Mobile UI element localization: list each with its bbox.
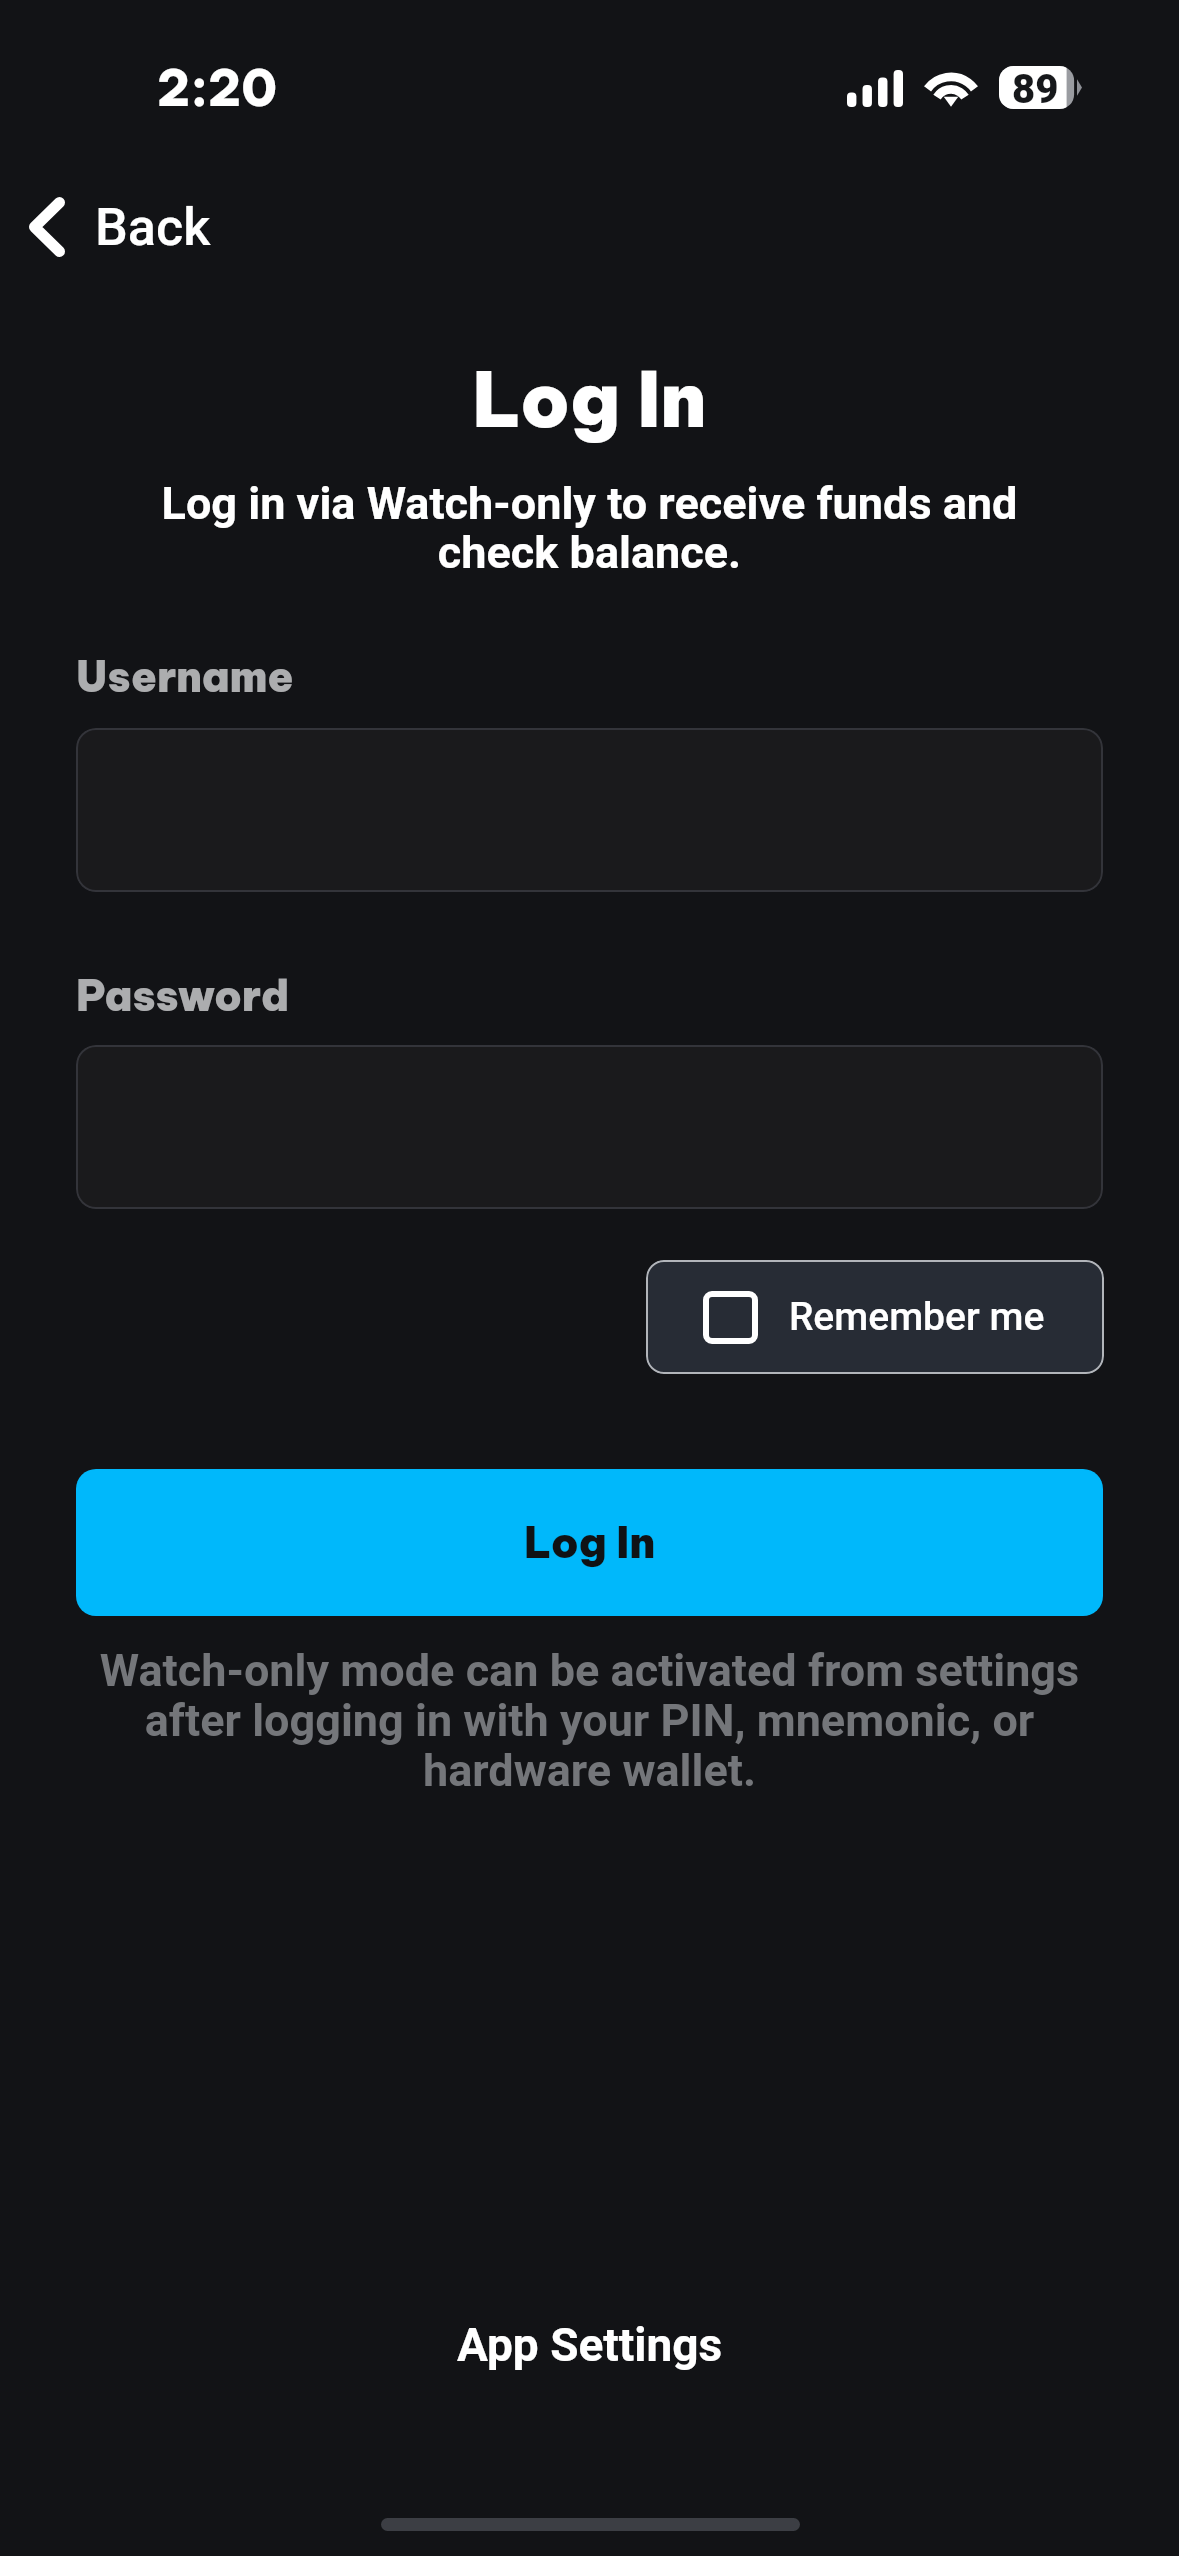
staticText: Password bbox=[76, 969, 290, 1022]
staticText: Watch-only mode can be activated from se… bbox=[74, 1644, 1105, 1797]
button[interactable]: App Settings bbox=[410, 2304, 770, 2386]
staticText: Username bbox=[76, 650, 294, 703]
button[interactable] bbox=[76, 1045, 1103, 1209]
staticText: Log in via Watch-only to receive funds a… bbox=[140, 477, 1039, 579]
staticText: 2:20 bbox=[157, 56, 277, 119]
staticText: 89 bbox=[1012, 66, 1059, 109]
button[interactable]: Log In bbox=[76, 1469, 1103, 1616]
staticText: Back bbox=[95, 197, 211, 258]
staticText: Log In bbox=[524, 1516, 656, 1569]
staticText: Log In bbox=[0, 352, 1179, 447]
staticText: App Settings bbox=[457, 2318, 723, 2372]
staticText: Remember me bbox=[789, 1294, 1045, 1340]
button[interactable]: Remember me bbox=[646, 1260, 1104, 1374]
other: Back bbox=[28, 197, 65, 257]
button[interactable]: Back bbox=[0, 170, 250, 284]
button[interactable] bbox=[76, 728, 1103, 892]
